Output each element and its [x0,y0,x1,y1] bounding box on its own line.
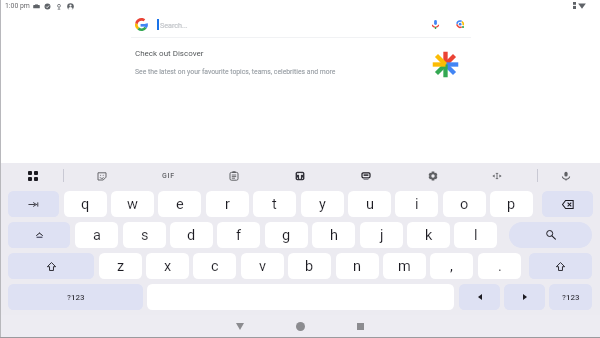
button[interactable]: Search... [131,13,472,36]
staticText: m [398,258,411,275]
button[interactable]: h [312,222,355,248]
button[interactable]: ?123 [8,284,143,310]
button[interactable]: v [241,253,284,279]
staticText: o [460,196,469,213]
button[interactable]: d [170,222,213,248]
button[interactable]: y [301,191,344,217]
button[interactable]: n [336,253,379,279]
button[interactable]: Clipboard [221,163,247,189]
staticText: z [117,258,125,275]
button[interactable]: Home [240,315,360,338]
button[interactable]: i [395,191,438,217]
staticText: See the latest on your favourite topics,… [135,68,336,76]
staticText: b [305,258,314,275]
staticText: 1:00 pm [5,2,30,10]
staticText: k [425,227,433,244]
staticText: s [141,227,149,244]
staticText: u [366,196,374,213]
staticText: i [415,196,419,213]
other: Voice search [432,20,439,29]
button[interactable]: ?123 [549,284,592,310]
staticText: t [272,196,277,213]
button[interactable]: Backspace [542,191,593,217]
staticText: p [507,196,516,213]
button[interactable]: Keyboard menu [20,163,46,189]
button[interactable]: g [265,222,308,248]
button[interactable]: w [111,191,154,217]
staticText: v [259,258,267,275]
button[interactable]: l [454,222,497,248]
button[interactable]: c [193,253,236,279]
button[interactable]: r [206,191,249,217]
button[interactable]: Text editing [484,163,510,189]
staticText: l [474,227,478,244]
button[interactable]: Shift [529,253,592,279]
staticText: GIF [162,172,175,180]
button[interactable]: Search [509,222,592,248]
staticText: r [225,196,230,213]
staticText: d [187,227,196,244]
staticText: h [330,227,338,244]
button[interactable]: Tab [8,191,59,217]
button[interactable]: Move cursor left [459,284,500,310]
button[interactable]: e [158,191,201,217]
button[interactable]: Back [180,315,300,338]
button[interactable]: Stickers [89,163,115,189]
button[interactable]: z [99,253,142,279]
button[interactable]: . [478,253,521,279]
staticText: y [319,196,326,213]
staticText: ?123 [67,293,85,302]
button[interactable]: f [217,222,260,248]
staticText: a [93,227,101,244]
staticText: q [81,196,90,213]
button[interactable]: Translate [287,163,313,189]
staticText: n [353,258,362,275]
button[interactable]: Move cursor right [504,284,545,310]
button[interactable]: p [490,191,533,217]
button[interactable]: , [430,253,473,279]
button[interactable]: a [75,222,118,248]
staticText: Check out Discover [135,49,204,58]
button[interactable]: o [443,191,486,217]
staticText: Search... [160,21,188,29]
button[interactable]: GIF [156,163,180,189]
staticText: , [450,258,453,275]
button[interactable]: Shift [8,253,94,279]
staticText: j [380,227,384,244]
staticText: c [211,258,219,275]
button[interactable]: Floating keyboard [353,163,379,189]
button[interactable]: Caps lock [8,222,70,248]
staticText: w [127,196,138,213]
button[interactable]: s [123,222,166,248]
button[interactable]: t [253,191,296,217]
button[interactable]: Check out Discover [131,42,472,86]
button[interactable]: q [64,191,107,217]
button[interactable]: x [146,253,189,279]
button[interactable]: Recent apps [300,315,420,338]
staticText: e [176,196,184,213]
staticText: ?123 [562,293,580,302]
button[interactable]: u [348,191,391,217]
staticText: f [236,227,242,244]
button[interactable]: m [383,253,426,279]
staticText: g [282,227,291,244]
button[interactable]: j [360,222,403,248]
button[interactable]: k [407,222,450,248]
button[interactable]: b [288,253,331,279]
staticText: . [498,258,502,275]
staticText: x [164,258,172,275]
button[interactable]: Voice input [553,163,579,189]
other: Google Lens [456,20,465,29]
button[interactable]: Settings [420,163,446,189]
